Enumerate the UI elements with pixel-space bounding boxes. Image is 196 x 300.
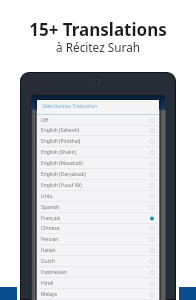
button[interactable]: Italian bbox=[37, 245, 159, 256]
staticText: Spanish bbox=[41, 204, 60, 211]
button[interactable]: Indonesian bbox=[37, 267, 159, 278]
staticText: English (Saheeh) bbox=[41, 127, 80, 134]
button[interactable]: English (Yusuf Ali) bbox=[37, 180, 159, 191]
staticText: Hindi bbox=[41, 280, 54, 287]
button[interactable]: Dutch bbox=[37, 256, 159, 267]
button[interactable]: Spanish bbox=[37, 202, 159, 213]
staticText: Melays bbox=[41, 291, 58, 298]
staticText: Sélectionnez Traduction bbox=[42, 103, 98, 110]
staticText: à Récitez Surah bbox=[0, 39, 196, 55]
staticText: Indonesian bbox=[41, 269, 68, 276]
button[interactable]: Melays bbox=[37, 289, 159, 300]
button[interactable]: Hindi bbox=[37, 278, 159, 289]
button[interactable]: English (Maududi) bbox=[37, 158, 159, 169]
button[interactable]: Off bbox=[37, 115, 159, 126]
staticText: 15+ Translations bbox=[0, 18, 196, 41]
button[interactable]: English (Shakir) bbox=[37, 147, 159, 158]
staticText: Urdu bbox=[41, 193, 53, 200]
staticText: Français bbox=[41, 215, 61, 222]
staticText: Chinese bbox=[41, 225, 60, 232]
staticText: English (Yusuf Ali) bbox=[41, 182, 82, 189]
staticText: Persian bbox=[41, 236, 59, 243]
staticText: Dutch bbox=[41, 258, 55, 265]
button[interactable]: English (Daryabadi) bbox=[37, 169, 159, 180]
button[interactable]: Urdu bbox=[37, 191, 159, 202]
staticText: English (Shakir) bbox=[41, 149, 77, 156]
button[interactable]: English (Pickthal) bbox=[37, 136, 159, 147]
staticText: Off bbox=[41, 117, 49, 124]
staticText: English (Maududi) bbox=[41, 160, 83, 167]
staticText: English (Daryabadi) bbox=[41, 171, 86, 178]
button[interactable]: English (Saheeh) bbox=[37, 125, 159, 136]
staticText: Italian bbox=[41, 247, 56, 254]
staticText: English (Pickthal) bbox=[41, 138, 81, 145]
button[interactable]: Persian bbox=[37, 234, 159, 245]
button[interactable]: Français bbox=[37, 213, 159, 224]
button[interactable]: Chinese bbox=[37, 223, 159, 234]
